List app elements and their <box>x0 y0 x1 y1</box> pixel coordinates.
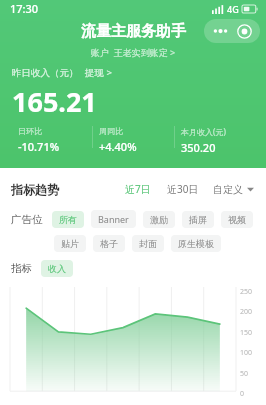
button[interactable]: 贴片 <box>54 235 86 252</box>
staticText: 所有 <box>59 214 77 225</box>
button[interactable]: 封面 <box>132 235 164 252</box>
button[interactable]: More and target menu <box>204 19 260 43</box>
staticText: 4G <box>227 3 239 15</box>
button[interactable]: 激励 <box>143 211 175 228</box>
staticText: 250 <box>240 287 253 297</box>
staticText: 周同比 <box>99 126 123 136</box>
staticText: 近30日 <box>167 182 199 196</box>
button[interactable]: 视频 <box>221 211 253 228</box>
staticText: 收入 <box>48 263 66 274</box>
staticText: 0 <box>240 389 245 399</box>
staticText: 封面 <box>139 238 157 249</box>
button[interactable]: 近7日 <box>121 180 155 198</box>
button[interactable]: 原生模板 <box>171 235 221 252</box>
staticText: 日环比 <box>18 126 42 136</box>
staticText: 50 <box>240 369 249 379</box>
staticText: 插屏 <box>189 214 207 225</box>
staticText: 视频 <box>228 214 246 225</box>
staticText: 指标趋势 <box>11 182 59 197</box>
staticText: 150 <box>240 328 253 338</box>
button[interactable]: Banner <box>91 210 136 228</box>
button[interactable]: 格子 <box>93 235 125 252</box>
staticText: +4.40% <box>99 139 137 154</box>
button[interactable]: 所有 <box>52 211 84 228</box>
staticText: 原生模板 <box>178 238 214 249</box>
staticText: 近7日 <box>125 182 151 196</box>
staticText: 提现 > <box>85 66 112 79</box>
staticText: 流量主服务助手 <box>81 22 186 41</box>
staticText: 17:30 <box>10 1 39 16</box>
staticText: 账户 王老实到账定 > <box>91 46 176 58</box>
button[interactable]: 近30日 <box>163 180 203 198</box>
staticText: 自定义 <box>213 183 243 196</box>
staticText: 165.21 <box>12 83 97 120</box>
button[interactable]: 收入 <box>41 260 73 277</box>
staticText: -10.71% <box>18 139 60 154</box>
staticText: 200 <box>240 307 253 317</box>
staticText: 350.20 <box>181 140 216 155</box>
staticText: 贴片 <box>61 238 79 249</box>
staticText: 激励 <box>150 214 168 225</box>
staticText: 指标 <box>11 262 32 275</box>
button[interactable]: 插屏 <box>182 211 214 228</box>
button[interactable]: 账户 王老实到账定 > <box>91 46 176 58</box>
button[interactable]: 提现 > <box>85 66 112 79</box>
staticText: 本月收入(元) <box>181 126 226 137</box>
button[interactable]: 自定义 <box>211 181 256 198</box>
staticText: 昨日收入（元） <box>12 67 79 79</box>
staticText: Banner <box>98 213 129 225</box>
staticText: 格子 <box>100 238 118 249</box>
staticText: 100 <box>240 348 253 358</box>
staticText: 广告位 <box>11 213 43 226</box>
